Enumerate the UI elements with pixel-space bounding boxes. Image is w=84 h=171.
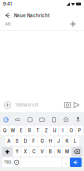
button[interactable]: D <box>22 136 29 146</box>
staticText: M <box>65 149 69 154</box>
staticText: R <box>28 128 31 133</box>
button[interactable]: B <box>47 147 54 156</box>
staticText: K <box>65 138 68 144</box>
button[interactable]: F <box>30 136 37 146</box>
button[interactable]: Key <box>2 147 12 156</box>
button[interactable]: O <box>67 126 75 135</box>
button[interactable]: Send <box>70 158 82 167</box>
button[interactable]: P <box>76 126 83 135</box>
button[interactable]: C <box>30 147 37 156</box>
button[interactable]: Back <box>2 9 12 21</box>
staticText: ?123 <box>4 160 11 164</box>
button[interactable]: S <box>13 136 21 146</box>
button[interactable]: K <box>63 136 71 146</box>
button[interactable]: G <box>38 136 46 146</box>
button[interactable]: X <box>22 147 29 156</box>
staticText: A <box>7 138 10 144</box>
button[interactable]: U <box>51 126 58 135</box>
staticText: S <box>15 138 18 144</box>
button[interactable]: N <box>55 147 62 156</box>
staticText: O <box>70 128 73 133</box>
staticText: F <box>32 138 35 144</box>
staticText: H <box>49 138 52 144</box>
button[interactable]: Clipboard <box>51 117 57 123</box>
staticText: Y <box>15 149 18 154</box>
staticText: Neue Nachricht <box>14 13 50 18</box>
button[interactable]: Keyboard settings <box>63 117 69 123</box>
staticText: 9:41 <box>3 1 12 7</box>
staticText: J <box>57 138 60 144</box>
staticText: U <box>53 128 56 133</box>
button[interactable]: H <box>47 136 54 146</box>
staticText: . <box>65 160 66 165</box>
staticText: X <box>24 149 27 154</box>
staticText: C <box>32 149 35 154</box>
button[interactable]: Z <box>42 126 50 135</box>
staticText: An: <box>5 22 11 26</box>
button[interactable]: A <box>5 136 12 146</box>
button[interactable]: Send <box>72 99 81 111</box>
button[interactable]: GIF <box>39 117 45 123</box>
staticText: V <box>40 149 43 154</box>
button[interactable]: Add recipient <box>68 20 78 28</box>
staticText: L <box>74 138 77 144</box>
staticText: I <box>62 128 63 133</box>
staticText: T <box>36 128 39 133</box>
staticText: E <box>20 128 23 133</box>
staticText: G <box>40 138 43 144</box>
button[interactable]: V <box>38 147 46 156</box>
button[interactable]: I <box>59 126 66 135</box>
button[interactable]: Stickers <box>27 117 33 123</box>
staticText: Textnachricht <box>15 103 38 107</box>
staticText: Q <box>3 128 6 133</box>
button[interactable]: E <box>17 126 25 135</box>
button[interactable]: W <box>9 126 17 135</box>
staticText: D <box>24 138 27 144</box>
button[interactable]: L <box>71 136 79 146</box>
button[interactable]: J <box>55 136 62 146</box>
button[interactable]: M <box>63 147 71 156</box>
button[interactable]: T <box>34 126 42 135</box>
button[interactable]: Key <box>71 147 82 156</box>
button[interactable]: Add attachment <box>3 99 12 111</box>
button[interactable]: . <box>62 158 69 167</box>
staticText: N <box>57 149 60 154</box>
button[interactable]: Text editing <box>15 117 21 123</box>
button[interactable]: Voice input <box>75 117 81 123</box>
staticText: B <box>49 149 52 154</box>
button[interactable]: Y <box>13 147 21 156</box>
staticText: P <box>78 128 81 133</box>
button[interactable]: Camera <box>63 99 72 111</box>
button[interactable]: Google search <box>3 117 9 123</box>
button[interactable]: ?123 <box>2 158 12 167</box>
staticText: Z <box>45 128 48 133</box>
button[interactable]: R <box>26 126 33 135</box>
button[interactable]: Key <box>13 158 20 167</box>
button[interactable]: Q <box>1 126 8 135</box>
staticText: W <box>10 128 15 133</box>
